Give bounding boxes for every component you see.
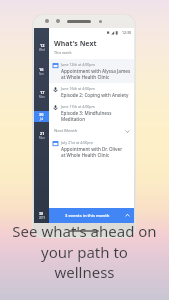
button[interactable]: June 16th at 4:00pm bbox=[49, 83, 134, 101]
other: Collapse bbox=[125, 213, 130, 218]
staticText: Mon bbox=[39, 136, 45, 140]
staticText: at Whole Health Clinic bbox=[61, 74, 110, 80]
staticText: June 12th at 4:00pm bbox=[61, 62, 95, 67]
staticText: Appointment with Alyssa James bbox=[61, 68, 131, 74]
staticText: June 16th at 4:00pm bbox=[61, 86, 95, 91]
staticText: 3 events in this month bbox=[65, 213, 110, 219]
staticText: July 21st at 4:00pm bbox=[61, 140, 93, 145]
button[interactable]: 30 bbox=[34, 111, 49, 122]
staticText: 30 bbox=[39, 112, 44, 117]
staticText: Jul bbox=[40, 117, 44, 121]
other: Expand next month bbox=[125, 129, 130, 134]
staticText: Mon bbox=[39, 95, 45, 99]
staticText: This week bbox=[54, 50, 72, 55]
staticText: 12:30 bbox=[122, 30, 131, 35]
staticText: 16 bbox=[39, 67, 44, 72]
staticText: 2019 bbox=[39, 216, 45, 220]
button[interactable]: 17 bbox=[34, 89, 49, 100]
button[interactable]: July 21st at 4:00pm bbox=[49, 137, 134, 161]
staticText: Next Month bbox=[54, 128, 78, 134]
staticText: Wed bbox=[39, 48, 45, 52]
staticText: 30 bbox=[39, 211, 44, 216]
button[interactable]: June 17th at 4:00pm bbox=[49, 101, 134, 125]
staticText: your path to wellness bbox=[10, 242, 159, 282]
staticText: June 17th at 4:00pm bbox=[61, 104, 95, 109]
button[interactable]: 16 bbox=[34, 66, 49, 77]
button[interactable]: 30 bbox=[34, 208, 134, 223]
button[interactable]: June 12th at 4:00pm bbox=[49, 59, 134, 83]
staticText: Sun bbox=[39, 72, 44, 76]
staticText: at Whole Health Clinic bbox=[61, 152, 110, 158]
staticText: Appointment with Dr. Oliver bbox=[61, 146, 123, 152]
staticText: Episode 2: Coping with Anxiety bbox=[61, 92, 129, 98]
staticText: Episode 3: Mindfulness Meditation bbox=[61, 110, 131, 122]
button[interactable]: Next Month bbox=[49, 125, 134, 137]
staticText: What's Next bbox=[54, 39, 97, 49]
button[interactable]: 12 bbox=[34, 42, 49, 53]
staticText: 21 bbox=[40, 131, 45, 136]
staticText: See what's ahead on bbox=[12, 221, 157, 241]
staticText: 12 bbox=[40, 43, 45, 48]
staticText: 17 bbox=[40, 90, 45, 95]
button[interactable]: 21 bbox=[34, 130, 49, 141]
